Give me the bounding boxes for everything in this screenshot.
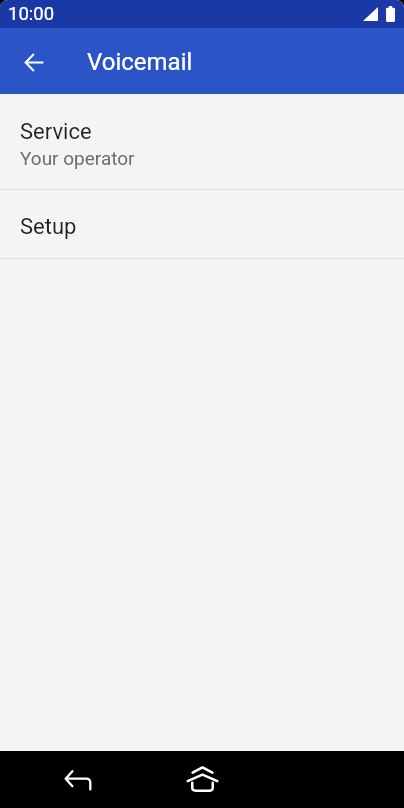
staticText: Setup [20,214,77,240]
button[interactable]: Service [0,94,404,189]
staticText: Service [20,119,92,145]
staticText: 10:00 [8,3,55,25]
button[interactable]: Home [176,754,228,806]
staticText: Your operator [20,147,135,169]
button[interactable]: Navigate up [12,40,56,84]
button[interactable]: Setup [0,190,404,258]
staticText: Voicemail [87,48,193,76]
button[interactable]: Back [52,754,104,806]
